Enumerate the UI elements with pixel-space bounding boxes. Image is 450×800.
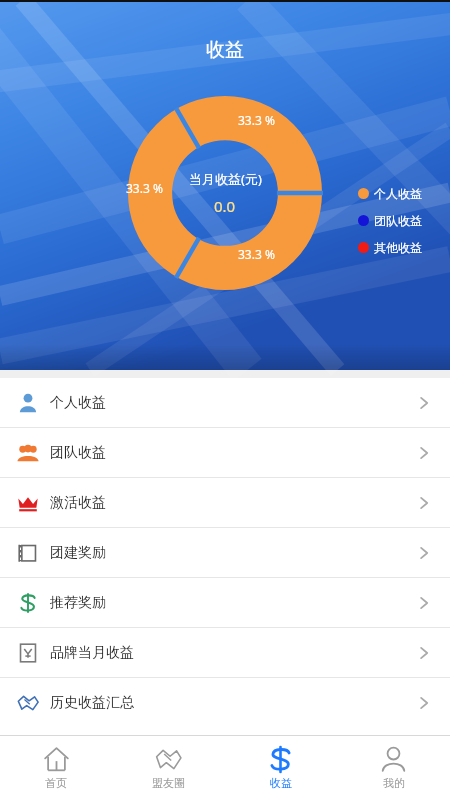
staticText: 当月收益(元) xyxy=(189,170,262,188)
staticText: 33.3 % xyxy=(126,180,163,196)
staticText: 团队收益 xyxy=(374,213,422,228)
button[interactable]: 首页 xyxy=(0,736,112,800)
staticText: 个人收益 xyxy=(374,186,422,201)
staticText: 33.3 % xyxy=(238,246,275,262)
staticText: 品牌当月收益 xyxy=(50,644,134,662)
staticText: 收益 xyxy=(206,38,244,62)
button[interactable]: 推荐奖励 xyxy=(0,578,450,627)
button[interactable]: 品牌当月收益 xyxy=(0,628,450,677)
button[interactable]: 盟友圈 xyxy=(112,736,224,800)
button[interactable]: 激活收益 xyxy=(0,478,450,527)
staticText: 首页 xyxy=(45,776,67,790)
staticText: 团建奖励 xyxy=(50,544,106,562)
button[interactable]: 历史收益汇总 xyxy=(0,678,450,727)
staticText: 我的 xyxy=(383,776,405,790)
staticText: 盟友圈 xyxy=(152,776,185,790)
staticText: 个人收益 xyxy=(50,394,106,412)
staticText: 其他收益 xyxy=(374,240,422,255)
button[interactable]: 我的 xyxy=(337,736,450,800)
staticText: 0.0 xyxy=(214,196,236,216)
staticText: 历史收益汇总 xyxy=(50,694,134,712)
staticText: 团队收益 xyxy=(50,444,106,462)
button[interactable]: 团建奖励 xyxy=(0,528,450,577)
button[interactable]: 团队收益 xyxy=(0,428,450,477)
staticText: 收益 xyxy=(270,776,292,790)
staticText: 33.3 % xyxy=(238,112,275,128)
staticText: 推荐奖励 xyxy=(50,594,106,612)
staticText: 激活收益 xyxy=(50,494,106,512)
button[interactable]: 个人收益 xyxy=(0,378,450,427)
button[interactable]: 收益 xyxy=(224,736,337,800)
